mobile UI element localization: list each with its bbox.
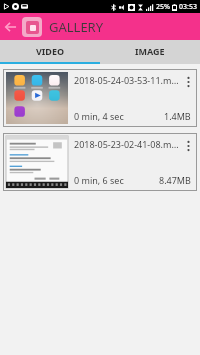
- staticText: 2018-05-23-02-41-08.mp4: [74, 138, 182, 150]
- staticText: 0 min, 4 sec: [74, 110, 124, 122]
- staticText: 03:53: [179, 2, 197, 12]
- button[interactable]: IMAGE: [100, 40, 200, 62]
- staticText: 0 min, 6 sec: [74, 174, 124, 186]
- staticText: 8.47MB: [159, 174, 191, 186]
- staticText: 2018-05-24-03-53-11.mp4: [74, 74, 182, 86]
- staticText: 1.4MB: [164, 110, 191, 122]
- button[interactable]: 2018-05-24-03-53-11.mp4: [4, 70, 196, 126]
- button[interactable]: More options: [182, 74, 194, 90]
- button[interactable]: VIDEO: [0, 40, 100, 62]
- button[interactable]: 2018-05-23-02-41-08.mp4: [4, 134, 196, 190]
- staticText: GALLERY: [49, 18, 104, 36]
- button[interactable]: Back: [0, 16, 22, 38]
- staticText: IMAGE: [135, 45, 165, 57]
- staticText: 25%: [156, 2, 170, 12]
- button[interactable]: More options: [182, 138, 194, 154]
- staticText: VIDEO: [36, 45, 65, 57]
